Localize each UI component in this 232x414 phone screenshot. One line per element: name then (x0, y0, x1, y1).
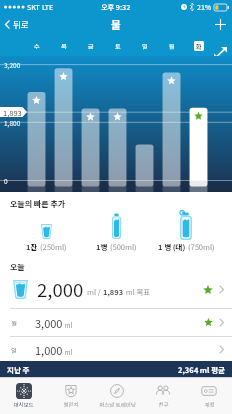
staticText: ml (63, 320, 73, 329)
staticText: 3,200 (4, 60, 21, 69)
button[interactable]: 1병 (81, 209, 151, 252)
staticText: (500ml) (110, 241, 137, 252)
button[interactable]: 퍼스널 트레이닝 (94, 378, 140, 414)
staticText: 오늘의 빠른 추가 (10, 198, 66, 210)
button[interactable]: 친구 (140, 378, 186, 414)
button[interactable]: 뒤로 (0, 15, 34, 33)
staticText: LTE (42, 2, 54, 12)
button[interactable]: 월 (163, 34, 181, 56)
staticText: 화 (196, 42, 202, 51)
button[interactable]: 화 (190, 34, 208, 56)
button[interactable]: 1잔 (11, 209, 81, 252)
button[interactable]: 일 (136, 34, 154, 56)
staticText: 토 (115, 42, 121, 51)
staticText: 1잔 (26, 241, 40, 252)
button[interactable]: 토 (109, 34, 127, 56)
button[interactable]: 목 (55, 34, 73, 56)
staticText: 월 (169, 42, 175, 51)
staticText: 오늘 (10, 261, 25, 273)
staticText: 월 (11, 318, 17, 327)
button[interactable]: 금 (82, 34, 100, 56)
staticText: 1,893 (103, 286, 124, 297)
staticText: ml 목표 (124, 286, 151, 297)
staticText: 금 (88, 42, 94, 51)
staticText: (250ml) (40, 241, 67, 252)
staticText: ml / (87, 286, 103, 297)
staticText: 수 (34, 42, 40, 51)
staticText: (750ml) (188, 241, 215, 252)
staticText: 대시보드 (13, 401, 34, 409)
staticText: 오후 9:32 (101, 2, 131, 12)
staticText: 챌린지 (63, 401, 79, 409)
button[interactable]: 2,000 (0, 271, 232, 308)
staticText: 뒤로 (13, 18, 29, 30)
staticText: 친구 (158, 401, 169, 409)
staticText: 2,364 ml 평균 (178, 364, 225, 375)
staticText: 1,000 (35, 342, 63, 358)
button[interactable]: 추가 (209, 15, 232, 34)
staticText: 2,000 (37, 276, 84, 303)
button[interactable]: 1 병 (대) (151, 209, 221, 252)
button[interactable]: 계정 (186, 378, 232, 414)
button[interactable]: 지난 주 (0, 361, 232, 377)
staticText: ml (63, 347, 73, 356)
button[interactable]: 일 (0, 337, 232, 362)
staticText: 계정 (204, 401, 215, 409)
staticText: 퍼스널 트레이닝 (99, 401, 136, 409)
staticText: 1 병 (대) (158, 241, 188, 252)
staticText: 물 (111, 17, 121, 32)
staticText: 일 (11, 345, 17, 354)
button[interactable]: 대시보드 (0, 378, 47, 414)
staticText: 일 (142, 42, 148, 51)
button[interactable]: 전체 화면 (210, 42, 231, 63)
button[interactable]: 수 (28, 34, 46, 56)
button[interactable]: 챌린지 (47, 378, 94, 414)
staticText: 1병 (96, 241, 110, 252)
staticText: 0 (4, 176, 8, 185)
staticText: SKT (27, 2, 40, 12)
staticText: 21% (197, 2, 212, 12)
button[interactable]: 월 (0, 309, 232, 336)
staticText: 지난 주 (7, 364, 30, 375)
staticText: 1,893 (3, 107, 22, 118)
staticText: 3,000 (35, 315, 63, 331)
staticText: 목 (61, 42, 67, 51)
staticText: 1,800 (4, 118, 21, 127)
